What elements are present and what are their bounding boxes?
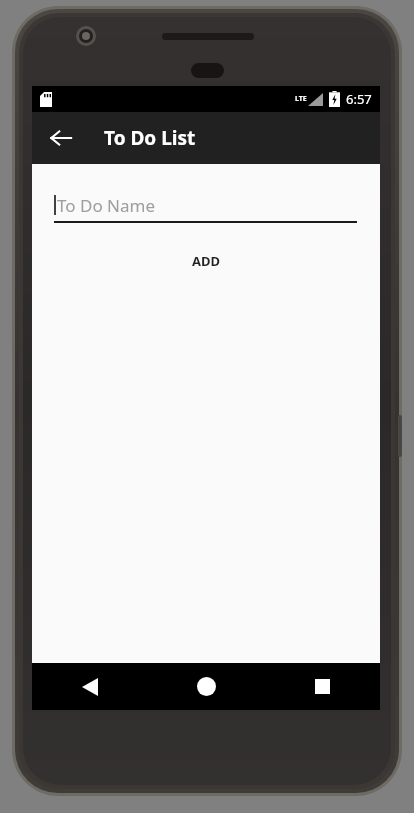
staticText: To Do List xyxy=(104,125,196,151)
button[interactable]: Back xyxy=(41,118,81,158)
button[interactable]: ADD xyxy=(176,244,237,278)
staticText: To Do Name xyxy=(57,194,156,217)
staticText: LTE xyxy=(295,94,307,104)
button[interactable]: Home xyxy=(148,663,264,710)
button[interactable]: Recent apps xyxy=(264,663,380,710)
button[interactable]: Back xyxy=(32,663,148,710)
button[interactable]: To Do Name xyxy=(54,192,357,223)
staticText: ADD xyxy=(192,252,221,270)
staticText: 6:57 xyxy=(346,90,372,108)
